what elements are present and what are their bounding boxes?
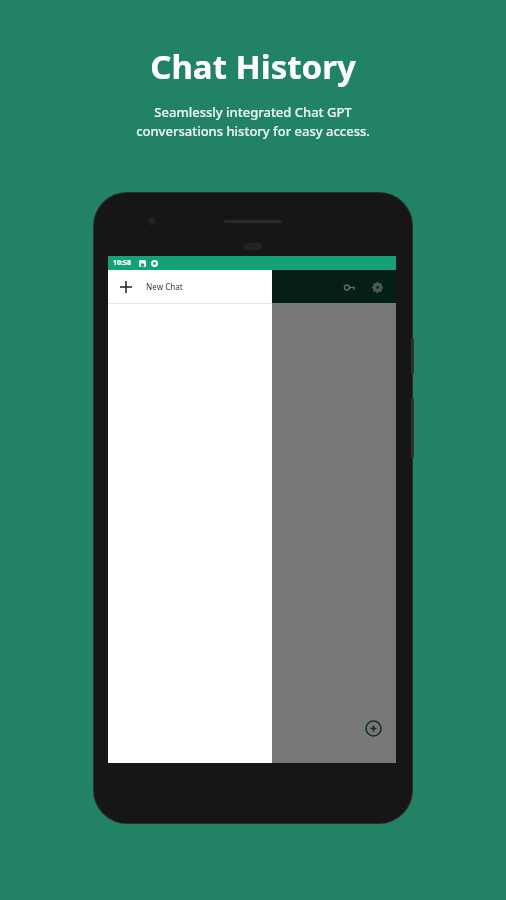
button[interactable]: API key <box>338 276 360 298</box>
staticText: New Chat <box>146 281 183 292</box>
button[interactable]: New chat <box>365 720 382 737</box>
button[interactable]: New Chat <box>108 270 272 303</box>
staticText: 10:58 <box>113 258 131 268</box>
button[interactable]: Settings <box>366 276 388 298</box>
staticText: Chat History <box>150 44 356 89</box>
staticText: Seamlessly integrated Chat GPT conversat… <box>136 103 370 140</box>
